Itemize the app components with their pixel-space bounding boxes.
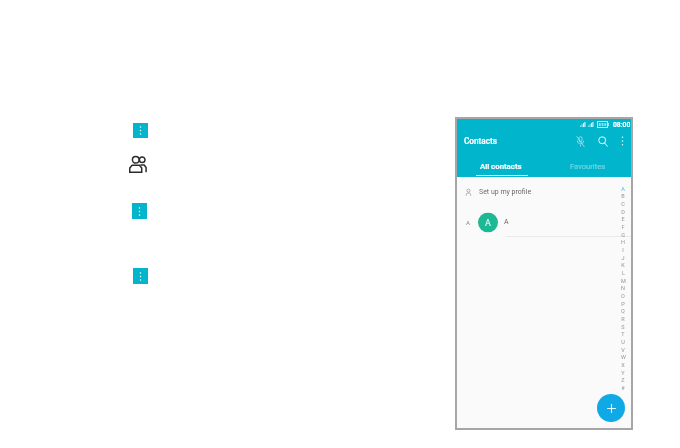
button[interactable]: Q	[615, 307, 631, 315]
button[interactable]: I	[615, 246, 631, 254]
staticText: #	[621, 385, 625, 391]
button[interactable]: B	[615, 192, 631, 200]
button[interactable]: H	[615, 238, 631, 246]
staticText: M	[621, 278, 626, 284]
staticText: B	[621, 193, 625, 199]
staticText: C	[621, 201, 625, 207]
button[interactable]: J	[615, 254, 631, 262]
button[interactable]: R	[615, 315, 631, 323]
button[interactable]: D	[615, 208, 631, 216]
staticText: K	[621, 262, 625, 268]
button[interactable]: V	[615, 346, 631, 354]
staticText: W	[621, 354, 626, 360]
button[interactable]: More options	[133, 268, 148, 284]
staticText: Z	[621, 377, 625, 383]
button[interactable]: A	[457, 207, 631, 237]
staticText: R	[621, 316, 625, 322]
button[interactable]: Voice search off	[571, 130, 589, 152]
button[interactable]: O	[615, 292, 631, 300]
button[interactable]: Contacts	[129, 155, 148, 173]
button[interactable]: More options	[133, 123, 148, 138]
staticText: F	[621, 224, 625, 230]
button[interactable]: K	[615, 261, 631, 269]
button[interactable]: T	[615, 330, 631, 338]
button[interactable]: P	[615, 300, 631, 308]
staticText: A	[485, 217, 491, 228]
button[interactable]: Y	[615, 369, 631, 377]
staticText: Contacts	[464, 136, 497, 146]
button[interactable]: M	[615, 277, 631, 285]
staticText: L	[622, 270, 625, 276]
staticText: Favourites	[570, 161, 606, 170]
button[interactable]: W	[615, 353, 631, 361]
staticText: 08:00	[613, 121, 631, 129]
staticText: All contacts	[480, 161, 522, 170]
staticText: J	[621, 255, 625, 261]
button[interactable]: Favourites	[544, 157, 631, 177]
button[interactable]: G	[615, 231, 631, 239]
button[interactable]: A	[615, 185, 631, 193]
staticText: P	[621, 301, 625, 307]
button[interactable]: X	[615, 361, 631, 369]
button[interactable]: All contacts	[457, 157, 544, 177]
staticText: I	[622, 247, 624, 253]
staticText: S	[621, 324, 625, 330]
staticText: Q	[621, 308, 625, 314]
staticText: T	[621, 331, 625, 337]
staticText: E	[621, 216, 625, 222]
staticText: N	[621, 285, 625, 291]
button[interactable]: N	[615, 284, 631, 292]
staticText: V	[621, 347, 625, 353]
staticText: G	[621, 232, 625, 238]
staticText: Y	[621, 370, 625, 376]
button[interactable]: Set up my profile	[457, 177, 631, 207]
staticText: Set up my profile	[479, 188, 532, 196]
button[interactable]: F	[615, 223, 631, 231]
staticText: U	[621, 339, 625, 345]
staticText: H	[621, 239, 625, 245]
staticText: X	[621, 362, 625, 368]
button[interactable]: #	[615, 384, 631, 392]
staticText: A	[621, 186, 625, 192]
button[interactable]: More options	[614, 130, 631, 152]
staticText: D	[621, 209, 625, 215]
button[interactable]: C	[615, 200, 631, 208]
button[interactable]: U	[615, 338, 631, 346]
button[interactable]: More options	[132, 203, 147, 219]
button[interactable]: Add contact	[597, 394, 625, 422]
button[interactable]: Z	[615, 376, 631, 384]
staticText: O	[621, 293, 625, 299]
button[interactable]: E	[615, 215, 631, 223]
staticText: A	[466, 219, 470, 226]
staticText: A	[504, 218, 509, 226]
button[interactable]: Search	[594, 130, 612, 152]
button[interactable]: L	[615, 269, 631, 277]
button[interactable]: S	[615, 323, 631, 331]
